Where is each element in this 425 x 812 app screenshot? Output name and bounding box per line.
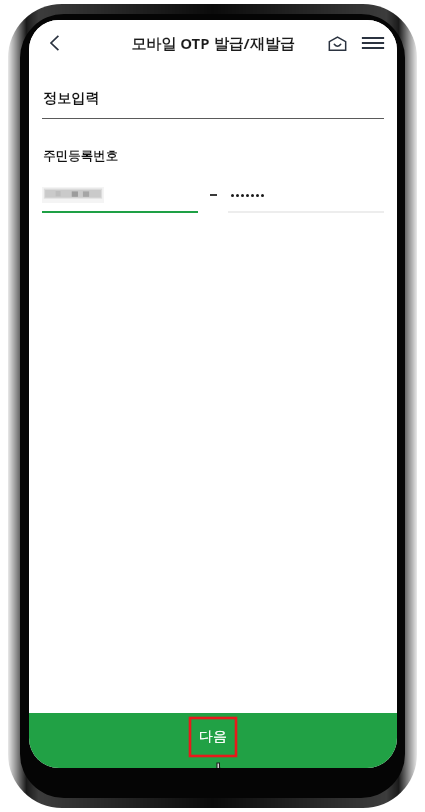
button[interactable] bbox=[42, 184, 198, 213]
staticText: 주민등록번호 bbox=[43, 148, 118, 164]
button[interactable] bbox=[228, 184, 384, 213]
staticText: 모바일 OTP 발급/재발급 bbox=[131, 33, 295, 53]
staticText: 정보입력 bbox=[43, 90, 99, 108]
button[interactable]: Home bbox=[319, 25, 355, 61]
button[interactable]: 다음 bbox=[29, 713, 397, 768]
button[interactable]: Menu bbox=[355, 25, 391, 61]
button[interactable]: Back bbox=[35, 23, 75, 63]
staticText: 다음 bbox=[199, 728, 227, 746]
